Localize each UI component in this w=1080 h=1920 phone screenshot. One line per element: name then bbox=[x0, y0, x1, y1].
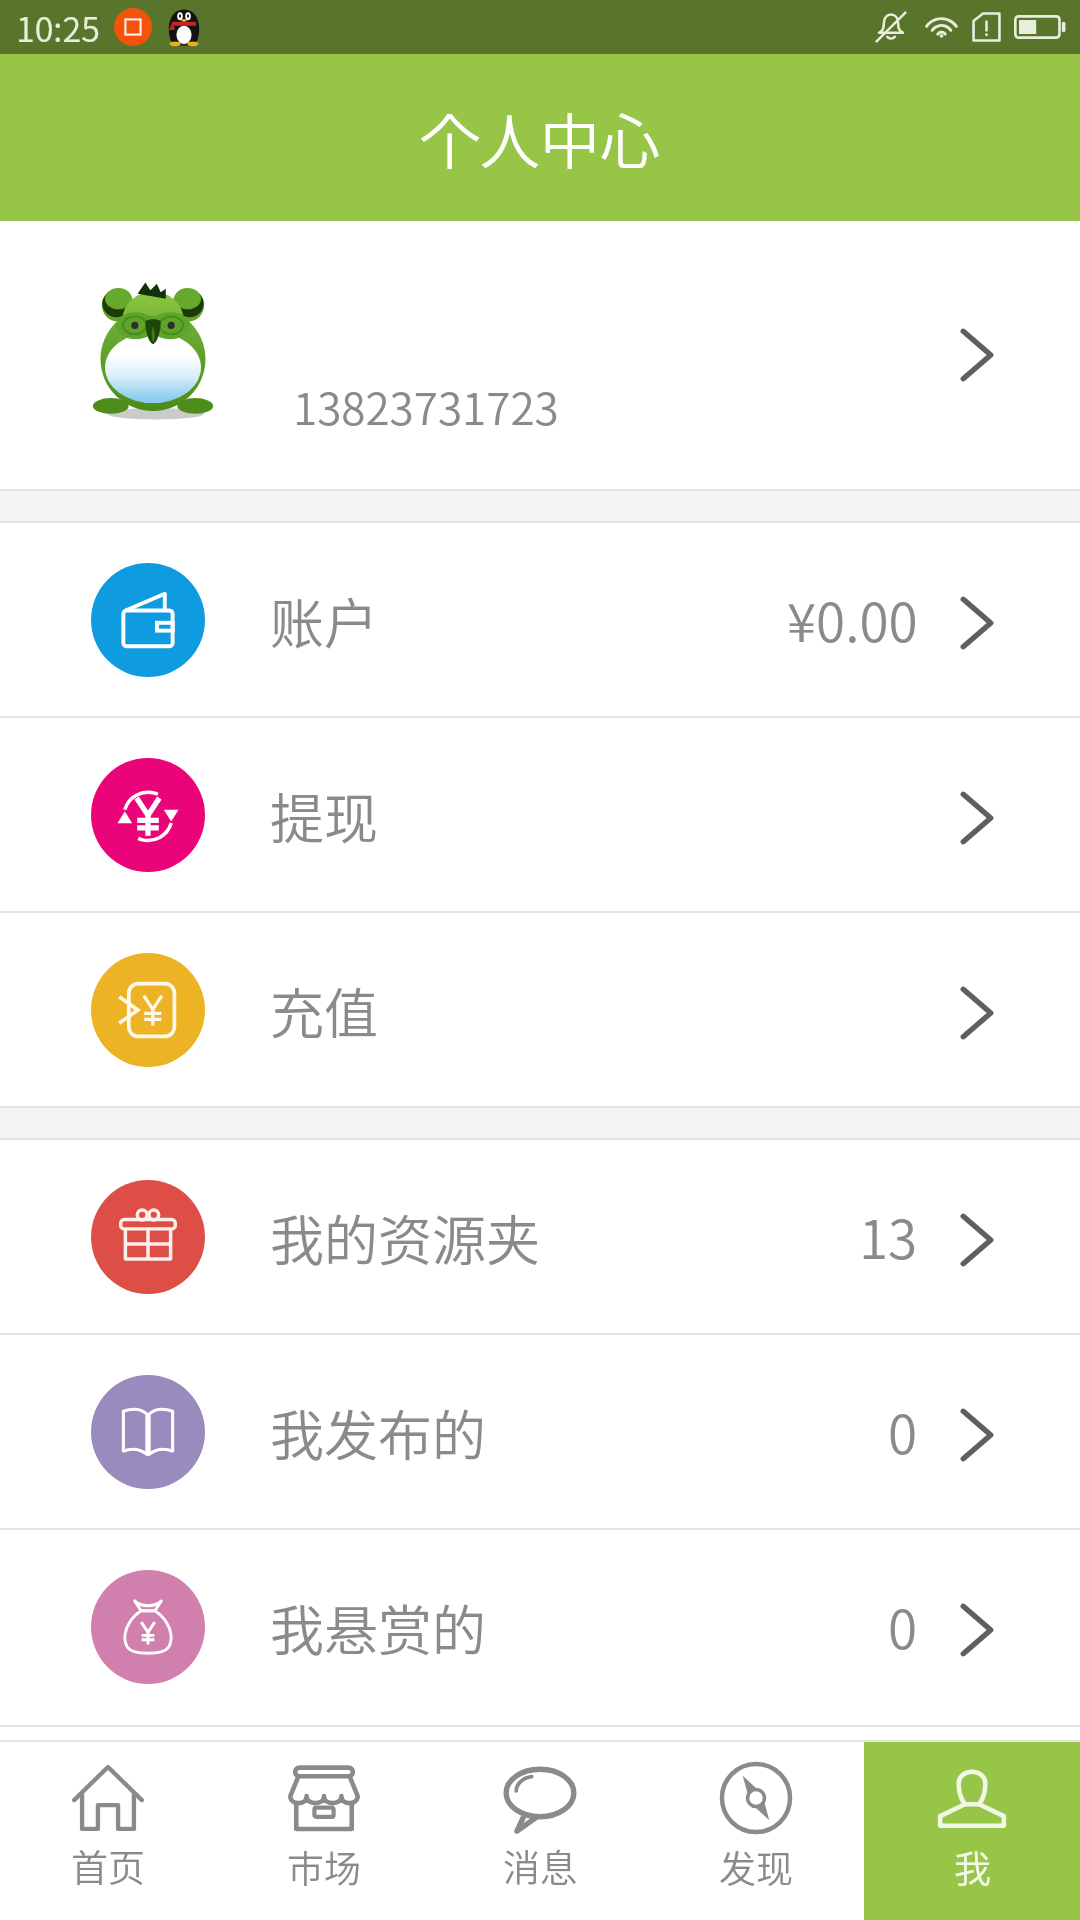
staticText: ¥0.00 bbox=[787, 581, 918, 658]
staticText: 提现 bbox=[270, 776, 378, 854]
button[interactable]: 充值 bbox=[0, 913, 1080, 1106]
staticText: 我 bbox=[954, 1840, 991, 1894]
button[interactable]: 提现 bbox=[0, 718, 1080, 911]
staticText: 13823731723 bbox=[293, 374, 559, 438]
staticText: 账户 bbox=[270, 581, 378, 659]
staticText: 10:25 bbox=[16, 3, 100, 52]
button[interactable]: 首页 bbox=[0, 1742, 216, 1920]
staticText: 首页 bbox=[71, 1839, 145, 1893]
button[interactable]: 市场 bbox=[216, 1742, 432, 1920]
button[interactable]: 消息 bbox=[432, 1742, 648, 1920]
staticText: 我悬赏的 bbox=[270, 1588, 486, 1666]
button[interactable]: 我悬赏的 bbox=[0, 1530, 1080, 1723]
staticText: 消息 bbox=[503, 1839, 577, 1893]
staticText: 充值 bbox=[270, 971, 378, 1049]
button[interactable]: 发现 bbox=[648, 1742, 864, 1920]
staticText: 0 bbox=[888, 1588, 918, 1665]
button[interactable]: 账户 bbox=[0, 523, 1080, 716]
button[interactable]: 我发布的 bbox=[0, 1335, 1080, 1528]
staticText: 我发布的 bbox=[270, 1393, 486, 1471]
staticText: 13 bbox=[859, 1198, 918, 1275]
button[interactable]: 我 bbox=[864, 1742, 1080, 1920]
button[interactable]: 我的资源夹 bbox=[0, 1140, 1080, 1333]
staticText: 我的资源夹 bbox=[270, 1198, 540, 1276]
button[interactable]: 个人资料 13823731723 bbox=[0, 221, 1080, 489]
staticText: 发现 bbox=[719, 1840, 793, 1894]
staticText: 个人中心 bbox=[420, 94, 660, 181]
staticText: 0 bbox=[888, 1393, 918, 1470]
staticText: 市场 bbox=[287, 1840, 361, 1894]
